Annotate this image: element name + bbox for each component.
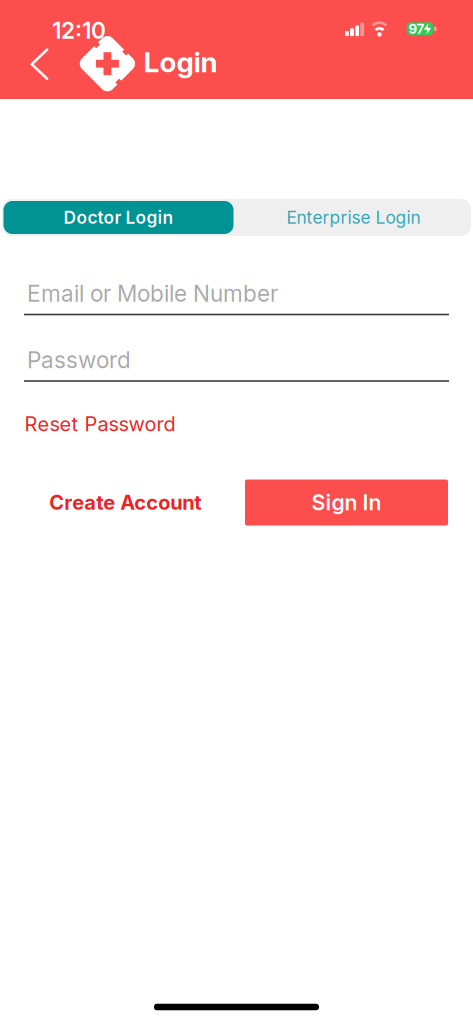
button[interactable]: Enterprise Login — [238, 201, 468, 234]
staticText: Doctor Login — [63, 207, 173, 228]
staticText: Enterprise Login — [286, 207, 420, 228]
button[interactable]: Doctor Login — [3, 201, 233, 234]
staticText: Create Account — [49, 491, 201, 514]
button[interactable]: Password — [24, 338, 449, 382]
staticText: 97 — [408, 21, 424, 37]
button[interactable]: Back — [0, 0, 473, 1024]
staticText: Email or Mobile Number — [27, 280, 278, 307]
staticText: Login — [143, 45, 217, 78]
button[interactable]: Create Account — [49, 491, 201, 514]
staticText: Reset Password — [24, 412, 175, 436]
button[interactable]: Email or Mobile Number — [24, 271, 449, 315]
button[interactable]: Reset Password — [24, 412, 449, 436]
staticText: Password — [27, 347, 131, 373]
staticText: 12:10 — [52, 17, 106, 44]
button[interactable]: Sign In — [245, 479, 448, 525]
staticText: Sign In — [311, 490, 381, 515]
